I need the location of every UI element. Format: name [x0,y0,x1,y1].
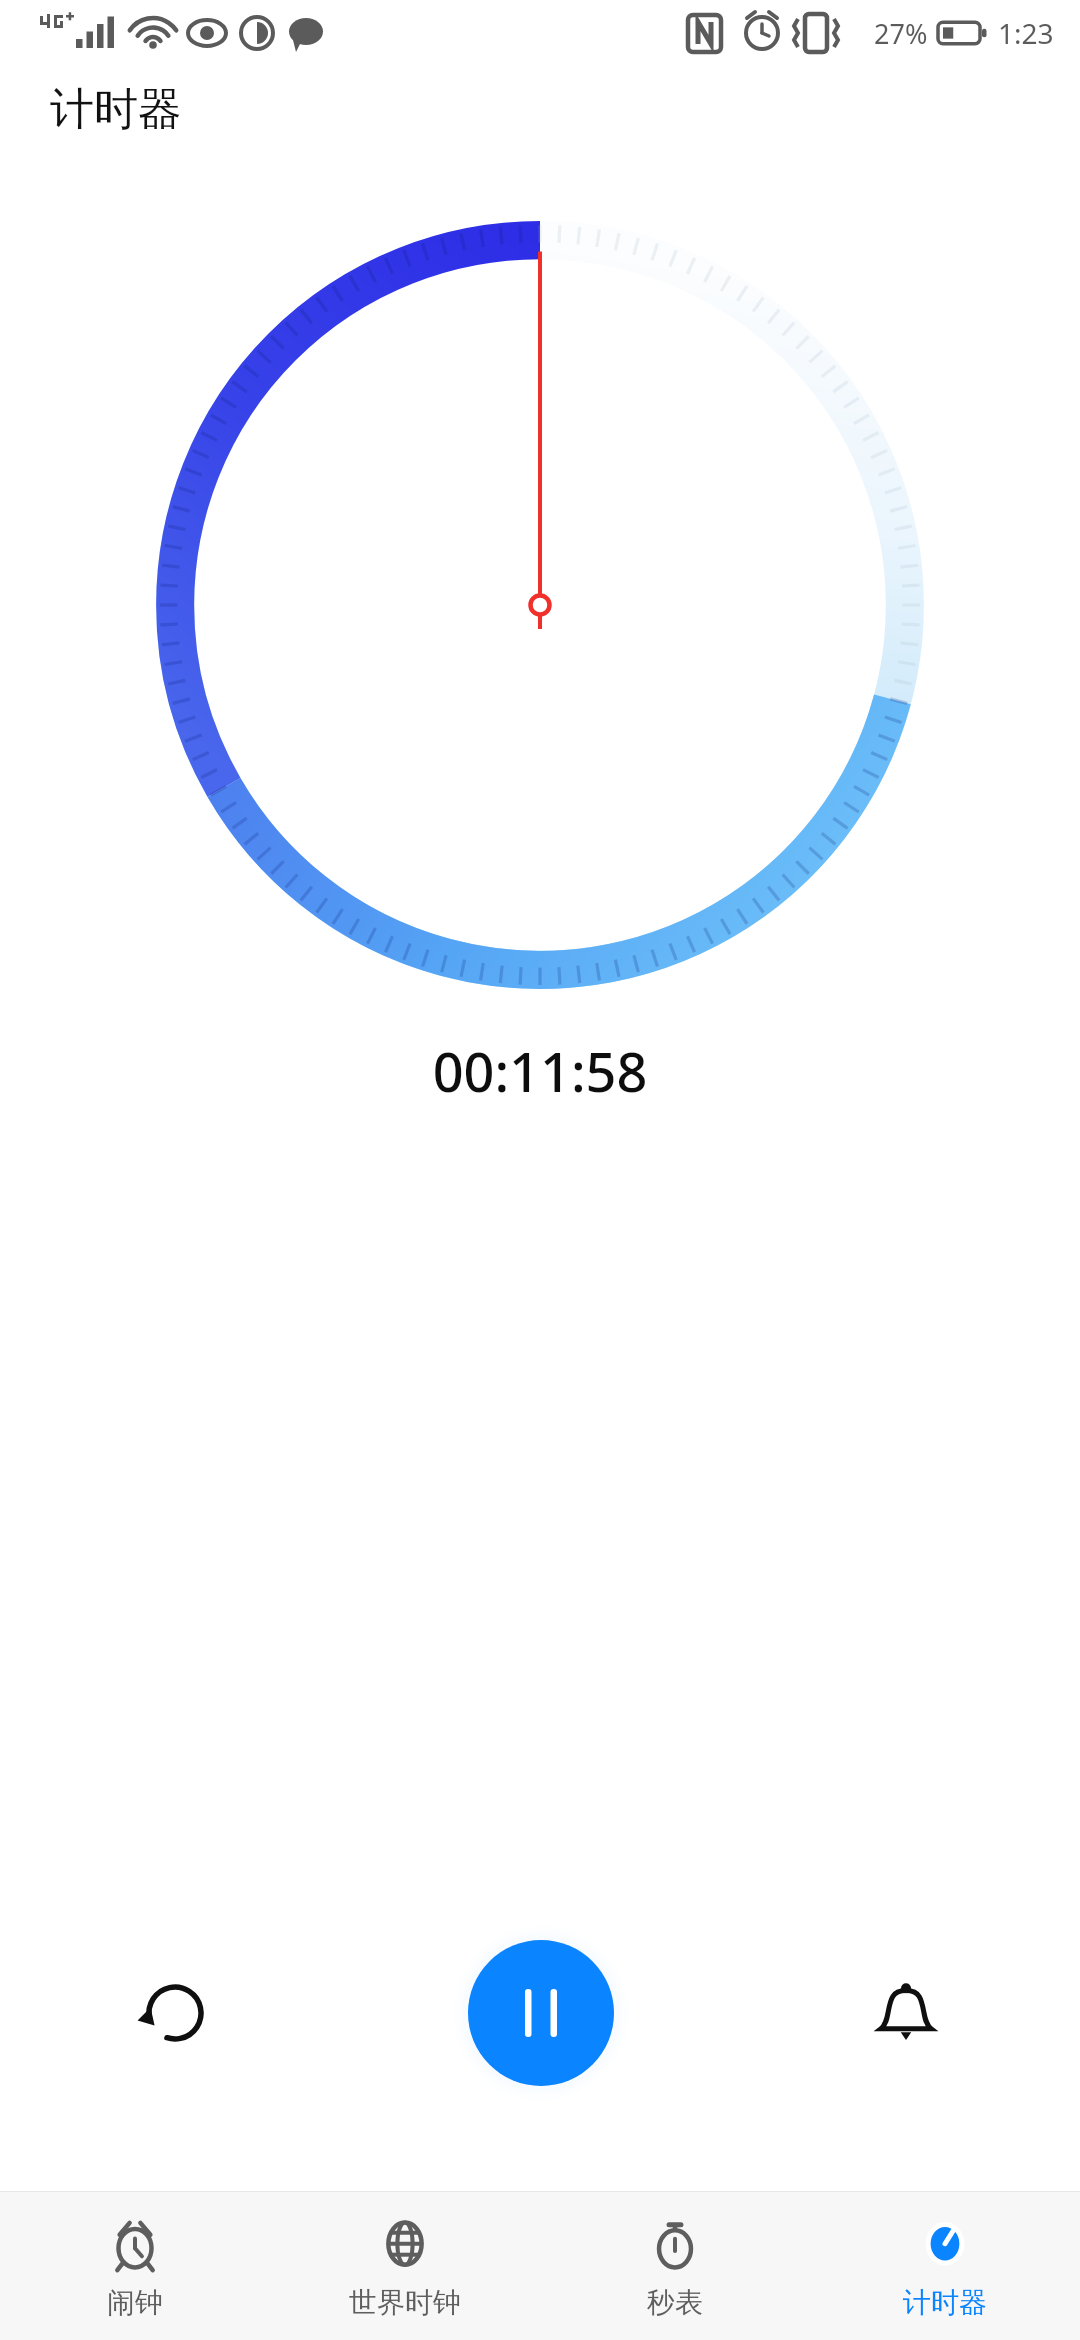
staticText: 闹钟 [107,2285,163,2320]
staticText: 00:11:58 [0,1034,1080,1108]
button[interactable]: 世界时钟 [270,2192,540,2340]
button[interactable]: Reset [119,1957,231,2069]
button[interactable]: 秒表 [540,2192,810,2340]
staticText: 计时器 [903,2285,987,2320]
staticText: 秒表 [647,2285,703,2320]
button[interactable]: Pause [468,1940,614,2086]
staticText: 27% [874,15,928,52]
button[interactable]: 计时器 [810,2192,1080,2340]
staticText: 世界时钟 [349,2285,461,2320]
staticText: 计时器 [50,82,182,137]
button[interactable]: Ringtone [850,1957,962,2069]
staticText: 1:23 [998,14,1054,52]
button[interactable]: 闹钟 [0,2192,270,2340]
